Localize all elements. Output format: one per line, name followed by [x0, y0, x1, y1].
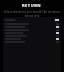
button[interactable]	[3, 28, 61, 31]
staticText: RETURN	[22, 3, 42, 8]
button[interactable]	[3, 22, 61, 25]
button[interactable]: RETURN	[0, 0, 64, 10]
button[interactable]	[3, 25, 61, 28]
button[interactable]	[3, 37, 61, 40]
staticText: Select the items you would like to retur…	[2, 10, 62, 17]
button[interactable]	[3, 40, 61, 43]
button[interactable]	[3, 34, 61, 37]
button[interactable]	[3, 31, 61, 34]
